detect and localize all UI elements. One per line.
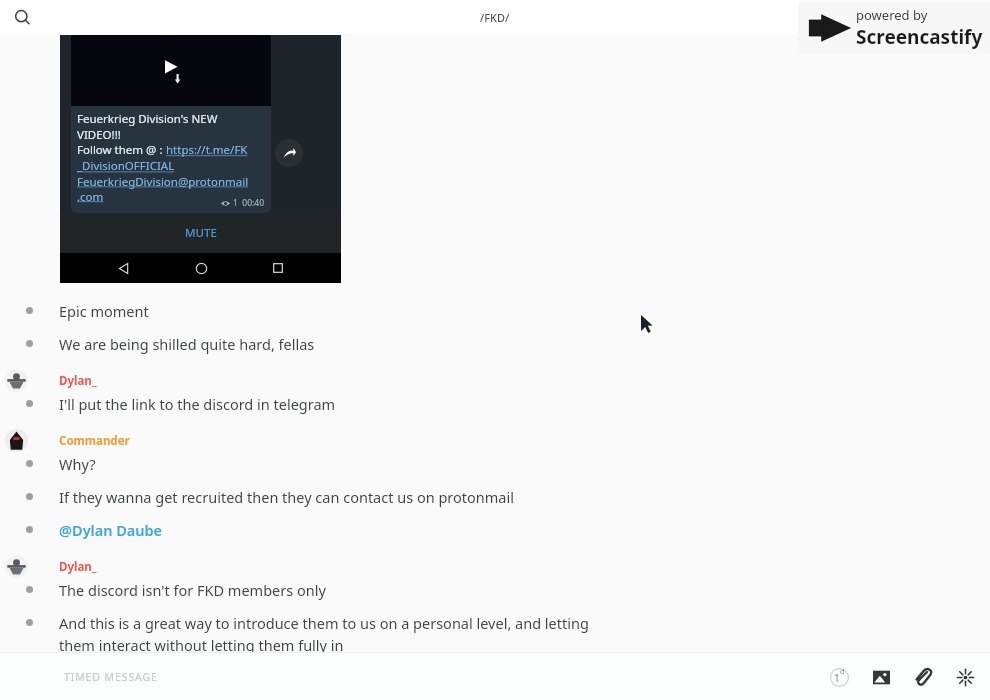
button[interactable]: Forward <box>275 139 303 167</box>
staticText: powered by <box>856 6 928 24</box>
button[interactable]: Effects <box>944 656 986 698</box>
staticText: MUTE <box>185 225 217 241</box>
staticText: d <box>840 667 845 677</box>
staticText: Dylan_ <box>59 559 97 575</box>
button[interactable]: Attach file <box>902 656 944 698</box>
button[interactable]: I'll put the link to the discord in tele… <box>0 394 990 414</box>
button[interactable]: Why? <box>0 454 990 474</box>
staticText: If they wanna get recruited then they ca… <box>59 487 514 507</box>
button[interactable]: Recents <box>263 253 293 283</box>
staticText: 1 <box>834 671 840 685</box>
staticText: @Dylan Daube <box>59 520 163 540</box>
staticText: /FKD/ <box>480 10 510 25</box>
button[interactable]: If they wanna get recruited then they ca… <box>0 487 990 507</box>
button[interactable]: MUTE <box>60 213 341 253</box>
staticText: TIMED MESSAGE <box>64 670 158 684</box>
button[interactable]: @Dylan Daube <box>0 520 990 540</box>
button[interactable]: Epic moment <box>0 301 990 321</box>
staticText: And this is a great way to introduce the… <box>59 613 589 652</box>
staticText: Screencastify <box>856 24 983 50</box>
staticText: Commander <box>59 433 130 449</box>
button[interactable]: Send photo <box>860 656 902 698</box>
button[interactable]: Dylan_ <box>0 555 990 578</box>
button[interactable]: We are being shilled quite hard, fellas <box>0 334 990 354</box>
staticText: Follow them @ : <box>77 142 166 158</box>
staticText: The discord isn't for FKD members only <box>59 580 326 600</box>
button[interactable]: Back <box>108 253 138 283</box>
button[interactable]: Dylan_ <box>0 369 990 392</box>
button[interactable]: Home <box>186 253 216 283</box>
staticText: Feuerkrieg Division's NEW VIDEO!!! <box>77 111 218 142</box>
staticText: Why? <box>59 454 96 474</box>
button[interactable]: And this is a great way to introduce the… <box>0 613 990 652</box>
staticText: Epic moment <box>59 301 149 321</box>
staticText: Dylan_ <box>59 373 97 389</box>
button[interactable]: Search <box>8 3 36 31</box>
button[interactable]: Feuerkrieg Division's NEW VIDEO!!! <box>60 35 341 283</box>
button[interactable]: Commander <box>0 429 990 452</box>
staticText: I'll put the link to the discord in tele… <box>59 394 336 414</box>
button[interactable]: The discord isn't for FKD members only <box>0 580 990 600</box>
staticText: 1 00:40 <box>233 197 265 209</box>
button[interactable]: Timer 1 day <box>818 656 860 698</box>
staticText: https://t.me/FK <box>166 142 248 158</box>
staticText: We are being shilled quite hard, fellas <box>59 334 315 354</box>
staticText: _DivisionOFFICIAL FeuerkriegDivision@pro… <box>77 158 249 204</box>
